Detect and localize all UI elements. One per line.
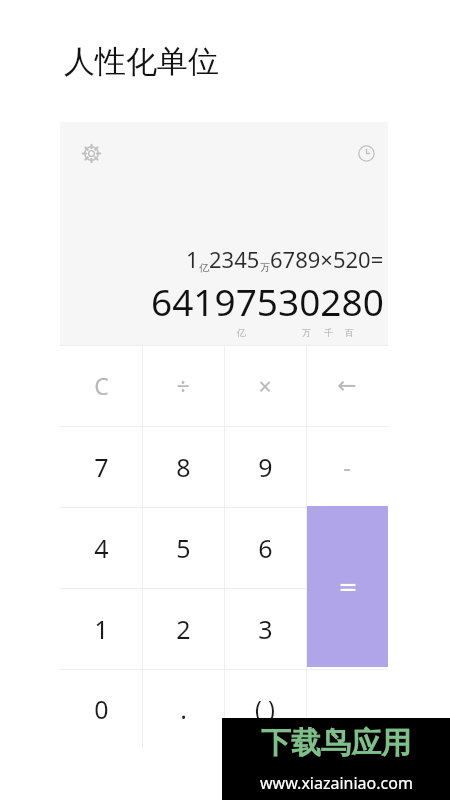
button[interactable]: C bbox=[60, 345, 142, 426]
staticText: 1 bbox=[94, 612, 109, 646]
button[interactable]: 5 bbox=[142, 507, 224, 588]
staticText: 3 bbox=[258, 612, 273, 646]
staticText: 6 bbox=[258, 531, 273, 565]
button[interactable] bbox=[307, 506, 388, 667]
staticText: 百 bbox=[345, 327, 354, 338]
staticText: ← bbox=[337, 372, 357, 399]
staticText: C bbox=[94, 370, 109, 401]
staticText: - bbox=[343, 451, 351, 482]
button[interactable]: × bbox=[224, 345, 306, 426]
staticText: 2 bbox=[176, 612, 191, 646]
staticText: 2345 bbox=[209, 244, 260, 274]
staticText: 4 bbox=[94, 531, 109, 565]
button[interactable]: 6 bbox=[224, 507, 306, 588]
staticText: 万 bbox=[302, 327, 311, 338]
button[interactable]: . bbox=[142, 669, 224, 748]
button[interactable]: 2 bbox=[142, 588, 224, 669]
staticText: × bbox=[258, 370, 272, 401]
button[interactable]: Settings bbox=[74, 136, 108, 170]
button[interactable]: 8 bbox=[142, 426, 224, 507]
staticText: 64197530280 bbox=[151, 276, 384, 326]
button[interactable]: 0 bbox=[60, 669, 142, 748]
staticText: 下载鸟应用 bbox=[261, 724, 411, 762]
staticText: ( ) bbox=[255, 693, 275, 724]
staticText: 亿 bbox=[237, 327, 246, 338]
staticText: . bbox=[180, 692, 187, 726]
button[interactable]: + bbox=[306, 507, 388, 588]
button[interactable] bbox=[306, 669, 388, 748]
staticText: 6789×520= bbox=[270, 244, 384, 274]
button[interactable]: History bbox=[349, 136, 383, 170]
staticText: 7 bbox=[94, 450, 109, 484]
button[interactable]: 3 bbox=[224, 588, 306, 669]
button[interactable]: 7 bbox=[60, 426, 142, 507]
staticText: 亿 bbox=[199, 261, 209, 274]
staticText: ÷ bbox=[176, 370, 190, 401]
staticText: 8 bbox=[176, 450, 191, 484]
staticText: 0 bbox=[94, 692, 109, 726]
button[interactable] bbox=[306, 588, 388, 669]
button[interactable]: 1 bbox=[60, 588, 142, 669]
staticText: 万 bbox=[260, 261, 270, 274]
staticText: 千 bbox=[324, 327, 333, 338]
button[interactable]: 4 bbox=[60, 507, 142, 588]
staticText: www.xiazainiao.com bbox=[260, 772, 413, 794]
button[interactable]: 9 bbox=[224, 426, 306, 507]
button[interactable]: ÷ bbox=[142, 345, 224, 426]
button[interactable]: ← bbox=[306, 345, 388, 426]
button[interactable]: ( ) bbox=[224, 669, 306, 748]
staticText: 9 bbox=[258, 450, 273, 484]
staticText: 1 bbox=[186, 244, 199, 274]
staticText: 人性化单位 bbox=[64, 42, 219, 81]
staticText: 5 bbox=[176, 531, 191, 565]
button[interactable]: - bbox=[306, 426, 388, 507]
